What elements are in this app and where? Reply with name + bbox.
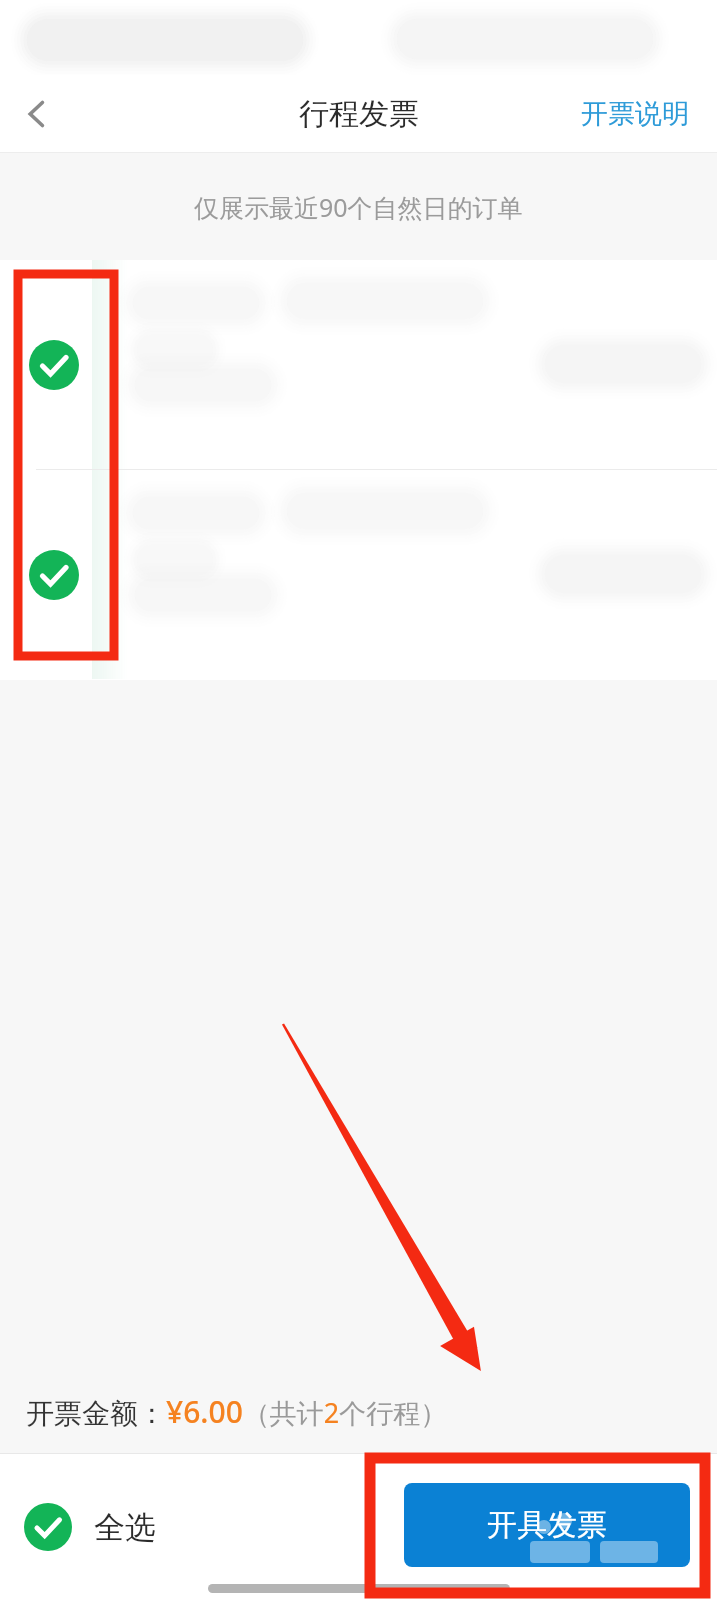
button[interactable]: Select trip: [0, 470, 717, 679]
staticText: 开具发票: [487, 1506, 607, 1544]
staticText: 仅展示最近90个自然日的订单: [194, 190, 523, 224]
button[interactable]: Back: [0, 77, 74, 151]
button[interactable]: 全选: [24, 1493, 172, 1561]
staticText: 开票说明: [581, 97, 689, 131]
button[interactable]: Select trip: [29, 340, 79, 390]
button[interactable]: Select trip: [0, 260, 717, 469]
button[interactable]: Select trip: [29, 550, 79, 600]
button[interactable]: 开具发票: [404, 1483, 690, 1567]
staticText: 开票金额：¥6.00（共计2个行程）: [26, 1391, 448, 1432]
staticText: 全选: [94, 1508, 156, 1547]
staticText: 行程发票: [299, 95, 419, 133]
button[interactable]: 开票说明: [553, 83, 717, 145]
